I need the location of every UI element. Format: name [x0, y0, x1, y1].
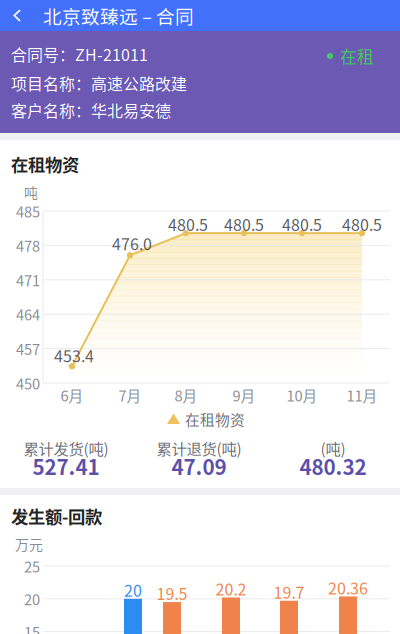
staticText: 6月	[60, 384, 83, 406]
staticText: 464	[16, 304, 40, 325]
staticText: 累计退货(吨)	[156, 437, 241, 459]
staticText: 在租物资	[11, 151, 79, 177]
staticText: 发生额-回款	[11, 503, 102, 529]
staticText: 485	[16, 200, 40, 222]
staticText: 吨	[24, 182, 38, 202]
staticText: 480.5	[168, 212, 208, 236]
staticText: 20	[124, 578, 142, 601]
staticText: 在租	[340, 44, 374, 68]
staticText: 万元	[15, 534, 43, 554]
staticText: 7月	[118, 384, 141, 406]
staticText: 15	[24, 621, 40, 634]
staticText: 457	[16, 338, 40, 359]
staticText: 480.32	[299, 451, 366, 481]
staticText: 480.5	[342, 212, 382, 236]
staticText: 10月	[286, 384, 317, 406]
staticText: 478	[16, 235, 40, 256]
staticText: 项目名称：高速公路改建	[11, 71, 187, 95]
staticText: 在租物资	[185, 408, 245, 430]
staticText: 453.4	[54, 344, 94, 367]
staticText: 北京致臻远 – 合同	[43, 2, 194, 29]
staticText: 9月	[232, 384, 255, 406]
staticText: 471	[16, 269, 40, 290]
staticText: 8月	[174, 384, 197, 406]
staticText: 20.36	[328, 576, 368, 599]
staticText: (吨)	[320, 437, 345, 459]
staticText: 480.5	[224, 212, 264, 236]
staticText: 480.5	[282, 212, 322, 236]
staticText: 25	[24, 555, 40, 577]
staticText: 19.7	[273, 580, 304, 603]
staticText: 20	[24, 588, 40, 609]
staticText: 476.0	[112, 232, 152, 255]
staticText: 47.09	[171, 451, 226, 481]
staticText: 527.41	[32, 451, 99, 481]
staticText: 客户名称：华北易安德	[11, 98, 171, 122]
staticText: 450	[16, 372, 40, 394]
staticText: 19.5	[156, 581, 187, 605]
staticText: 累计发货(吨)	[23, 437, 108, 459]
button[interactable]: Back	[0, 0, 34, 31]
staticText: 合同号：ZH-21011	[11, 42, 148, 66]
staticText: 11月	[346, 384, 377, 406]
staticText: 20.2	[215, 577, 246, 600]
